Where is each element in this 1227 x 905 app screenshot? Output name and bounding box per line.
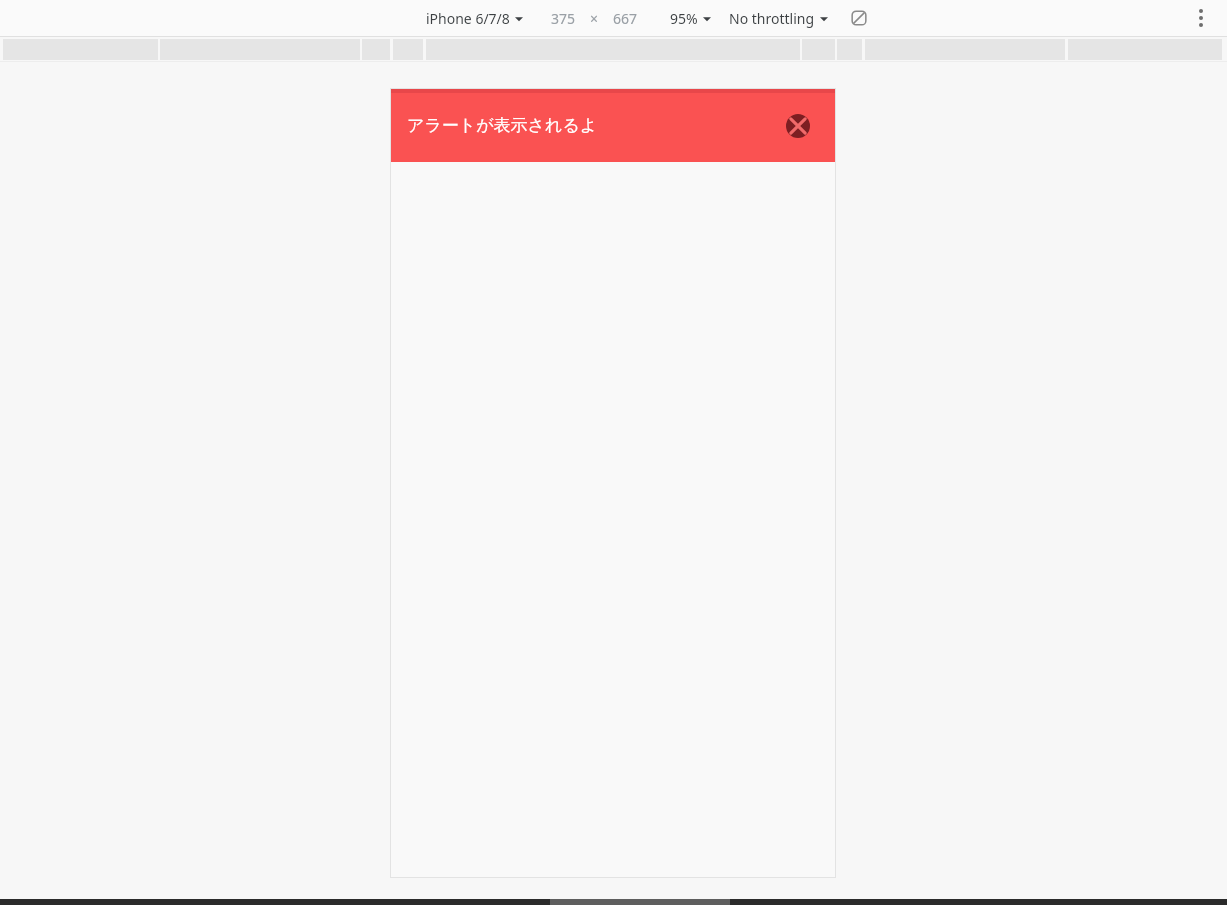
button[interactable]: Rotate viewport <box>844 3 874 33</box>
button[interactable]: iPhone 6/7/8 <box>424 5 525 32</box>
button[interactable]: Close alert <box>783 111 813 141</box>
button[interactable]: More options <box>1187 4 1215 32</box>
button[interactable]: No throttling <box>727 5 830 32</box>
staticText: 95% <box>670 9 698 28</box>
button[interactable]: 95% <box>668 5 713 32</box>
staticText: アラートが表示されるよ <box>407 115 598 136</box>
staticText: × <box>590 9 599 28</box>
staticText: No throttling <box>729 9 815 28</box>
staticText: iPhone 6/7/8 <box>426 9 510 28</box>
staticText: 375 <box>551 9 576 28</box>
staticText: 667 <box>613 9 638 28</box>
